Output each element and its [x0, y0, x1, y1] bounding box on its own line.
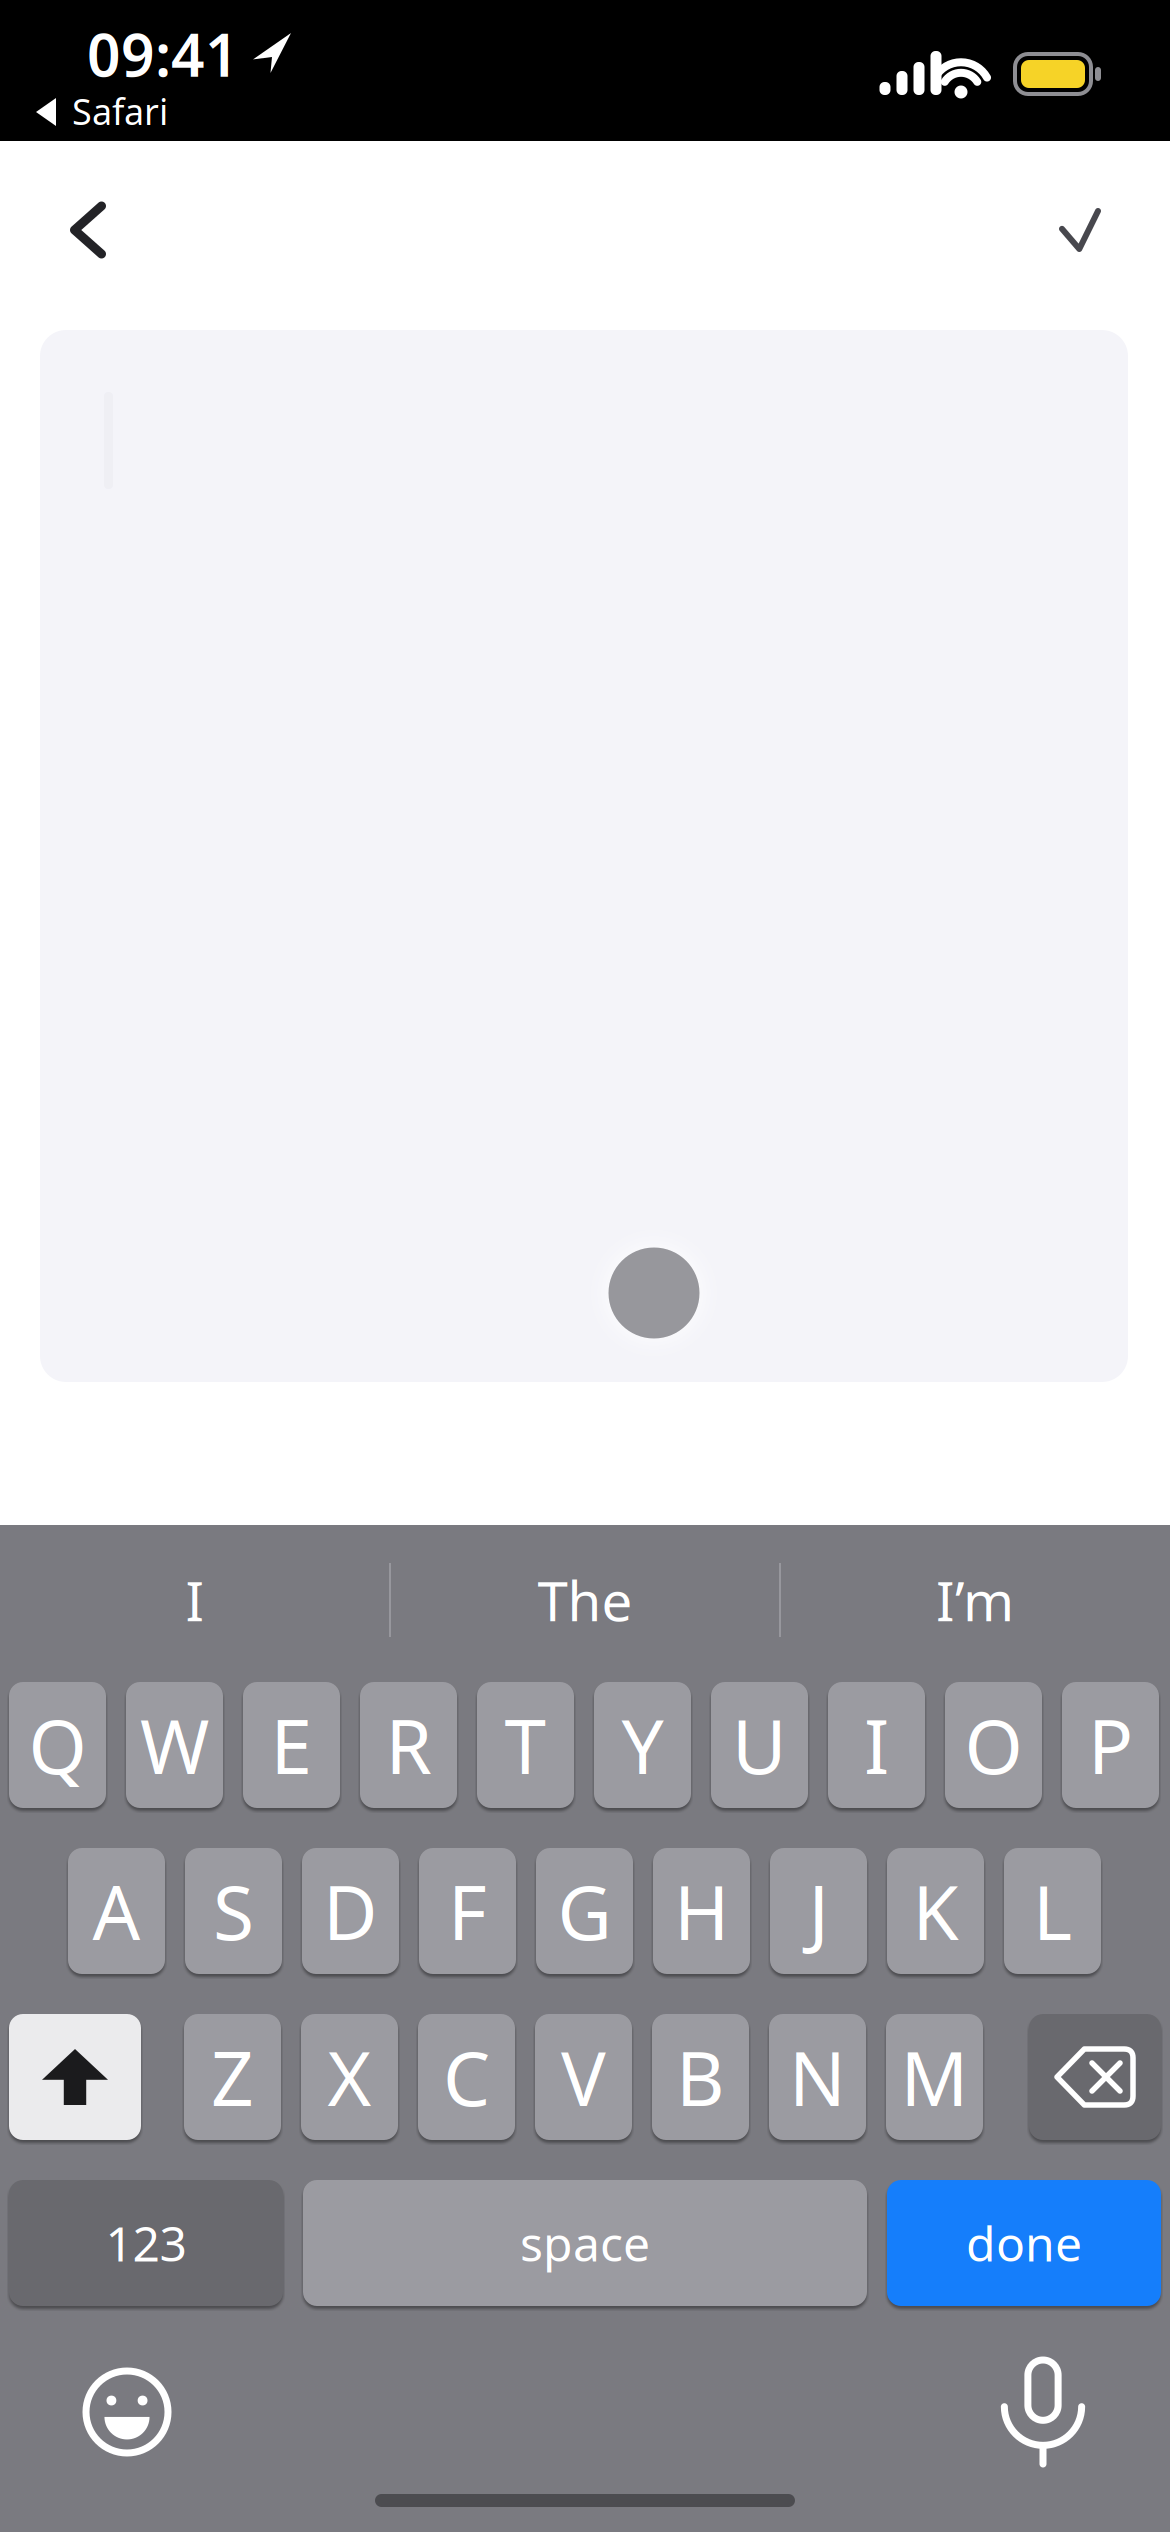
- button[interactable]: J: [770, 1848, 867, 1974]
- staticText: C: [443, 2027, 490, 2127]
- button[interactable]: Emoji: [72, 2357, 182, 2467]
- staticText: P: [1088, 1695, 1133, 1795]
- staticText: Z: [211, 2027, 254, 2127]
- staticText: 09:41: [87, 15, 239, 93]
- staticText: U: [732, 1695, 787, 1795]
- staticText: B: [676, 2027, 725, 2127]
- button[interactable]: X: [301, 2014, 398, 2140]
- button[interactable]: D: [302, 1848, 399, 1974]
- button[interactable]: A: [68, 1848, 165, 1974]
- staticText: T: [504, 1695, 546, 1795]
- button[interactable]: K: [887, 1848, 984, 1974]
- button[interactable]: Q: [9, 1682, 106, 1808]
- button[interactable]: Dictate: [987, 2346, 1099, 2478]
- staticText: space: [520, 2211, 650, 2275]
- staticText: I: [864, 1695, 889, 1795]
- button[interactable]: C: [418, 2014, 515, 2140]
- staticText: I: [185, 1564, 204, 1636]
- button[interactable]: H: [653, 1848, 750, 1974]
- staticText: I’m: [936, 1564, 1014, 1636]
- staticText: done: [966, 2211, 1082, 2275]
- button[interactable]: I: [1, 1525, 389, 1675]
- button[interactable]: W: [126, 1682, 223, 1808]
- button[interactable]: P: [1062, 1682, 1159, 1808]
- button[interactable]: S: [185, 1848, 282, 1974]
- staticText: W: [140, 1695, 209, 1795]
- button[interactable]: U: [711, 1682, 808, 1808]
- button[interactable]: done: [887, 2180, 1161, 2306]
- staticText: J: [808, 1861, 828, 1961]
- staticText: H: [674, 1861, 729, 1961]
- staticText: 123: [105, 2211, 186, 2275]
- button[interactable]: Z: [184, 2014, 281, 2140]
- staticText: V: [561, 2027, 606, 2127]
- staticText: S: [213, 1861, 254, 1961]
- button[interactable]: Delete: [1029, 2014, 1161, 2140]
- staticText: L: [1033, 1861, 1072, 1961]
- button[interactable]: M: [886, 2014, 983, 2140]
- staticText: F: [448, 1861, 487, 1961]
- staticText: X: [327, 2027, 371, 2127]
- button[interactable]: B: [652, 2014, 749, 2140]
- button[interactable]: V: [535, 2014, 632, 2140]
- button[interactable]: N: [769, 2014, 866, 2140]
- button[interactable]: 123: [9, 2180, 283, 2306]
- staticText: M: [900, 2027, 968, 2127]
- staticText: The: [537, 1564, 632, 1636]
- button[interactable]: Done: [1032, 181, 1128, 279]
- staticText: R: [385, 1695, 431, 1795]
- staticText: E: [270, 1695, 312, 1795]
- staticText: N: [789, 2027, 846, 2127]
- staticText: Y: [621, 1695, 663, 1795]
- button[interactable]: Y: [594, 1682, 691, 1808]
- staticText: D: [323, 1861, 378, 1961]
- button[interactable]: I’m: [781, 1525, 1169, 1675]
- button[interactable]: L: [1004, 1848, 1101, 1974]
- staticText: K: [912, 1861, 958, 1961]
- button[interactable]: Back: [44, 176, 131, 284]
- staticText: O: [964, 1695, 1022, 1795]
- button[interactable]: E: [243, 1682, 340, 1808]
- staticText: Q: [28, 1695, 86, 1795]
- button[interactable]: G: [536, 1848, 633, 1974]
- button[interactable]: Shift: [9, 2014, 141, 2140]
- button[interactable]: O: [945, 1682, 1042, 1808]
- staticText: A: [92, 1861, 140, 1961]
- button[interactable]: space: [303, 2180, 867, 2306]
- button[interactable]: F: [419, 1848, 516, 1974]
- button[interactable]: I: [828, 1682, 925, 1808]
- staticText: G: [557, 1861, 611, 1961]
- button[interactable]: T: [477, 1682, 574, 1808]
- button[interactable]: R: [360, 1682, 457, 1808]
- staticText: Safari: [72, 87, 168, 135]
- button[interactable]: The: [391, 1525, 779, 1675]
